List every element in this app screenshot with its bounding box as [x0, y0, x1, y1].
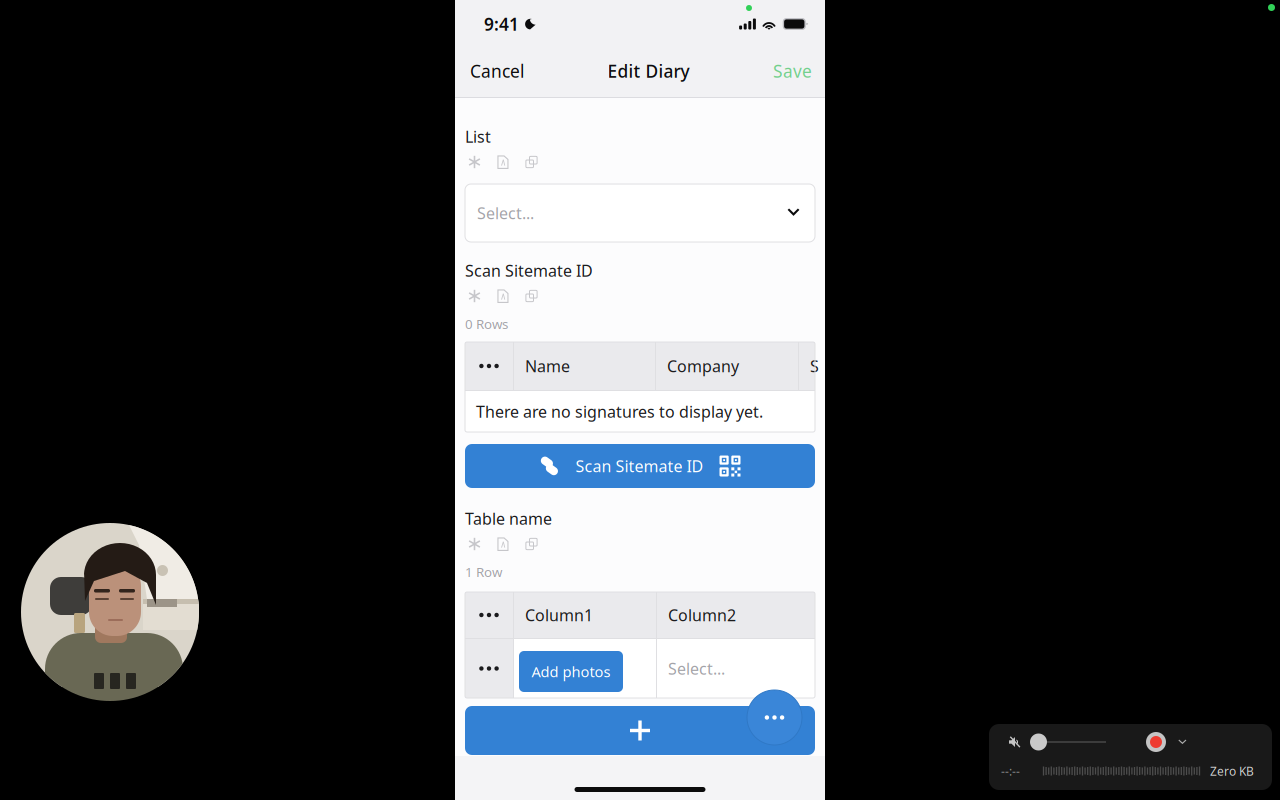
staticText: Add photos: [531, 662, 610, 681]
staticText: Select...: [477, 202, 534, 224]
staticText: S: [810, 355, 823, 377]
staticText: --:--: [1001, 763, 1020, 779]
staticText: Column2: [668, 604, 736, 626]
staticText: Save: [773, 59, 812, 82]
staticText: Select...: [668, 658, 725, 679]
staticText: Cancel: [470, 59, 524, 82]
button[interactable]: Add photos: [519, 651, 623, 692]
button[interactable]: Add row: [465, 706, 815, 755]
staticText: Name: [525, 355, 570, 377]
staticText: 9:41: [484, 12, 519, 35]
button[interactable]: Save: [769, 51, 816, 90]
staticText: 0 Rows: [465, 315, 508, 333]
staticText: 1 Row: [465, 563, 502, 581]
button[interactable]: Select...: [465, 184, 815, 242]
staticText: Zero KB: [1210, 763, 1254, 779]
button[interactable]: Scan Sitemate ID: [465, 444, 815, 488]
staticText: Table name: [465, 508, 552, 529]
staticText: Edit Diary: [607, 59, 689, 82]
staticText: Scan Sitemate ID: [465, 260, 593, 281]
staticText: There are no signatures to display yet.: [476, 401, 763, 422]
staticText: Column1: [525, 604, 593, 626]
staticText: List: [465, 126, 491, 147]
staticText: Company: [667, 355, 739, 377]
button[interactable]: More options: [747, 690, 802, 745]
staticText: Scan Sitemate ID: [575, 455, 703, 477]
button[interactable]: Cancel: [466, 51, 528, 90]
